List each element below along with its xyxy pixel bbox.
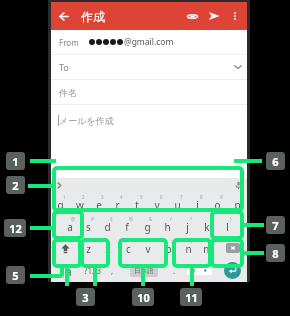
button[interactable]: Expand recipients (231, 60, 245, 74)
button[interactable]: Back (51, 4, 75, 28)
staticText: 1 (63, 194, 66, 200)
staticText: " (131, 238, 133, 244)
staticText: m (203, 242, 213, 256)
button[interactable]: 8 (187, 193, 207, 215)
staticText: @ (71, 216, 76, 222)
staticText: 3 (82, 290, 89, 305)
staticText: 7 (272, 218, 279, 233)
button[interactable]: ( (197, 215, 217, 237)
staticText: v (145, 242, 151, 256)
staticText: a (65, 263, 72, 279)
staticText: e (96, 198, 102, 212)
staticText: l (226, 220, 229, 234)
button[interactable]: Attach file (181, 5, 203, 27)
staticText: c (126, 242, 131, 256)
button[interactable]: 6 (147, 193, 167, 215)
button[interactable]: 4 (108, 193, 127, 215)
staticText: & (149, 216, 153, 222)
button[interactable]: Voice input (229, 178, 247, 193)
button[interactable]: Enter (217, 259, 247, 282)
staticText: あ (59, 272, 65, 279)
staticText: * (190, 216, 193, 222)
staticText: # (91, 216, 94, 222)
staticText: 12 (9, 221, 22, 236)
button[interactable]: 7 (167, 193, 187, 215)
staticText: 2 (12, 178, 19, 193)
staticText: x (105, 242, 111, 256)
button[interactable]: z (79, 237, 98, 259)
staticText: j (186, 220, 189, 234)
button[interactable]: ! (198, 237, 218, 259)
staticText: 11 (185, 290, 198, 305)
button[interactable]: : (158, 237, 178, 259)
staticText: 5 (140, 194, 143, 200)
staticText: ?123 (84, 265, 102, 276)
staticText: From (59, 37, 79, 48)
staticText: k (204, 220, 210, 234)
button[interactable]: Backspace (218, 237, 247, 259)
staticText: p (234, 198, 241, 212)
staticText: ' (151, 238, 153, 244)
staticText: 8 (200, 194, 203, 200)
staticText: To (59, 61, 69, 73)
staticText: 件名 (59, 87, 77, 98)
button[interactable]: 1 (51, 193, 70, 215)
staticText: % (129, 216, 133, 222)
button[interactable]: & (137, 215, 157, 237)
staticText: メールを作成 (59, 115, 114, 126)
button[interactable]: / (157, 215, 177, 237)
staticText: a (67, 220, 73, 234)
staticText: 作成 (81, 9, 105, 24)
staticText: 6 (160, 194, 163, 200)
staticText: g (144, 220, 151, 234)
button[interactable]: # (79, 215, 98, 237)
staticText: r (115, 198, 120, 212)
staticText: f (125, 220, 129, 234)
button[interactable]: 3 (89, 193, 108, 215)
button[interactable]: Space - Japanese (119, 259, 168, 282)
button[interactable]: x (98, 237, 118, 259)
staticText: 4 (120, 194, 123, 200)
button[interactable]: . (168, 259, 181, 282)
staticText: 8 (272, 246, 279, 261)
staticText: . (173, 265, 176, 276)
button[interactable]: Move cursor (181, 259, 217, 282)
button[interactable]: " (118, 237, 138, 259)
staticText: , (111, 265, 114, 276)
button[interactable]: ' (138, 237, 158, 259)
staticText: ) (230, 216, 232, 222)
staticText: : (171, 238, 173, 244)
button[interactable]: % (117, 215, 137, 237)
staticText: 5 (12, 268, 19, 283)
staticText: z (86, 242, 91, 256)
button[interactable]: Switch to Japanese input (51, 259, 79, 282)
button[interactable]: Symbols (79, 259, 106, 282)
button[interactable]: 0 (227, 193, 247, 215)
button[interactable]: 9 (207, 193, 227, 215)
staticText: ; (191, 238, 193, 244)
staticText: 2 (82, 194, 85, 200)
staticText: 7 (180, 194, 183, 200)
staticText: @gmail.com (124, 36, 174, 48)
staticText: 6 (272, 154, 279, 169)
staticText: o (214, 198, 221, 212)
button[interactable]: Send (203, 5, 225, 27)
button[interactable]: Shift (51, 237, 79, 259)
button[interactable]: @ (60, 215, 79, 237)
staticText: d (104, 220, 111, 234)
button[interactable]: 2 (70, 193, 89, 215)
staticText: u (174, 198, 181, 212)
button[interactable]: $ (98, 215, 117, 237)
button[interactable]: ) (217, 215, 237, 237)
staticText: h (164, 220, 171, 234)
staticText: / (170, 216, 172, 222)
button[interactable]: , (106, 259, 119, 282)
button[interactable]: Expand suggestions (51, 178, 67, 193)
button[interactable]: 5 (127, 193, 147, 215)
button[interactable]: More options (225, 6, 245, 26)
staticText: ! (211, 238, 213, 244)
staticText: t (135, 198, 139, 212)
button[interactable]: * (177, 215, 197, 237)
staticText: 日本語 (134, 267, 154, 275)
button[interactable]: ; (178, 237, 198, 259)
